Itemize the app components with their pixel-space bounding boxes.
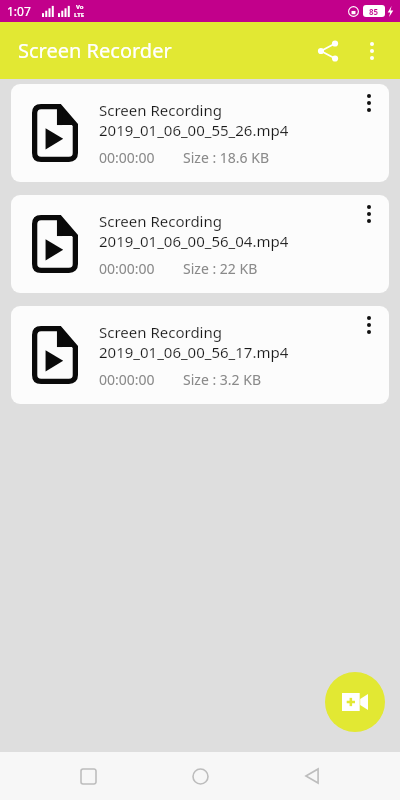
staticText: Screen Recorder [18, 37, 172, 64]
staticText: Size : 3.2 KB [183, 370, 261, 389]
staticText: Screen Recording [99, 100, 222, 120]
button[interactable]: Share [308, 31, 348, 71]
button[interactable]: Back [288, 752, 336, 800]
staticText: 1:07 [7, 3, 31, 19]
button[interactable]: Home [176, 752, 224, 800]
button[interactable]: New recording [325, 672, 385, 732]
staticText: LTE [74, 11, 85, 19]
staticText: 00:00:00 [99, 259, 155, 278]
button[interactable]: More options [349, 84, 389, 182]
button[interactable]: Screen Recording [11, 306, 389, 404]
button[interactable]: More options [349, 195, 389, 293]
staticText: Screen Recording [99, 211, 222, 231]
staticText: Vo [76, 3, 84, 11]
button[interactable]: More options [352, 31, 392, 71]
staticText: Screen Recording [99, 322, 222, 342]
staticText: 2019_01_06_00_55_26.mp4 [99, 120, 289, 140]
staticText: 00:00:00 [99, 148, 155, 167]
staticText: 85 [369, 6, 379, 17]
staticText: Size : 18.6 KB [183, 148, 269, 167]
button[interactable]: Recents [64, 752, 112, 800]
button[interactable]: More options [349, 306, 389, 404]
staticText: 00:00:00 [99, 370, 155, 389]
button[interactable]: Screen Recording [11, 195, 389, 293]
staticText: 2019_01_06_00_56_04.mp4 [99, 231, 289, 251]
button[interactable]: Screen Recording [11, 84, 389, 182]
staticText: Size : 22 KB [183, 259, 258, 278]
staticText: 2019_01_06_00_56_17.mp4 [99, 342, 289, 362]
